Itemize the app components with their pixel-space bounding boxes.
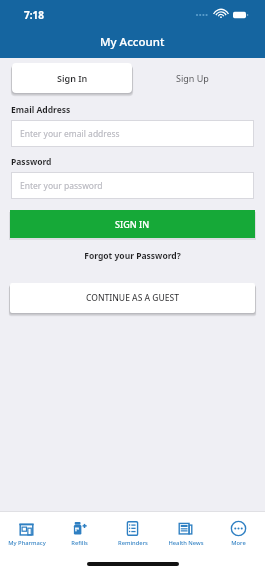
- staticText: CONTINUE AS A GUEST: [86, 292, 179, 304]
- staticText: Enter your password: [20, 180, 103, 192]
- staticText: More: [231, 539, 246, 547]
- staticText: Refills: [71, 539, 88, 547]
- staticText: Forgot your Password?: [0, 250, 265, 262]
- staticText: Health News: [168, 539, 204, 547]
- staticText: Sign In: [57, 72, 88, 84]
- button[interactable]: Sign Up: [132, 63, 253, 93]
- staticText: Enter your email address: [20, 128, 120, 140]
- button[interactable]: CONTINUE AS A GUEST: [10, 283, 255, 313]
- staticText: Password: [11, 156, 52, 168]
- staticText: My Account: [100, 34, 165, 50]
- staticText: 7:18: [24, 8, 44, 22]
- button[interactable]: More: [212, 512, 265, 554]
- button[interactable]: Enter your password: [11, 172, 254, 199]
- staticText: Sign Up: [176, 72, 209, 84]
- staticText: SIGN IN: [115, 218, 150, 230]
- button[interactable]: Reminders: [106, 512, 159, 554]
- button[interactable]: Enter your email address: [11, 120, 254, 147]
- button[interactable]: SIGN IN: [10, 210, 255, 238]
- button[interactable]: My Pharmacy: [0, 512, 53, 554]
- staticText: My Pharmacy: [8, 539, 46, 547]
- staticText: Reminders: [118, 539, 148, 547]
- button[interactable]: Refills: [53, 512, 106, 554]
- staticText: Email Address: [11, 104, 71, 116]
- button[interactable]: Health News: [159, 512, 212, 554]
- button[interactable]: Sign In: [12, 63, 132, 93]
